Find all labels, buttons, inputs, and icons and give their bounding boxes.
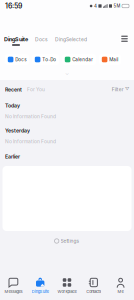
staticText: Earlier — [5, 153, 20, 160]
staticText: Yesterday — [5, 127, 30, 134]
button[interactable]: Me — [107, 278, 134, 294]
staticText: 4 — [94, 3, 97, 9]
staticText: DingSuite — [32, 289, 49, 294]
button[interactable]: Calendar — [62, 54, 96, 65]
staticText: 5M — [113, 3, 120, 9]
staticText: No Information Found — [5, 113, 56, 119]
button[interactable]: Messages — [0, 278, 27, 294]
staticText: Today — [5, 102, 20, 109]
button[interactable]: Filter — [112, 86, 129, 92]
staticText: 16:59 — [5, 2, 22, 10]
staticText: Workplace — [57, 289, 76, 294]
staticText: DingSelected — [55, 36, 87, 42]
staticText: Docs — [15, 57, 26, 62]
button[interactable]: Docs — [5, 54, 29, 65]
staticText: For You — [27, 86, 45, 92]
button[interactable]: Mail — [99, 54, 121, 65]
staticText: Settings — [60, 238, 79, 244]
button[interactable]: DingSelected — [55, 36, 87, 46]
button[interactable]: To-Do — [32, 54, 59, 65]
staticText: DingSuite — [4, 36, 28, 42]
staticText: Messages — [4, 289, 22, 294]
button[interactable]: Settings — [54, 238, 79, 244]
button[interactable]: DingSuite — [4, 36, 28, 46]
staticText: Mail — [109, 57, 118, 62]
staticText: ▽ — [125, 87, 129, 92]
button[interactable]: For You — [27, 86, 45, 92]
button[interactable]: Recent — [5, 86, 22, 93]
button[interactable]: Workplace — [54, 278, 80, 294]
button[interactable]: Menu — [119, 33, 130, 46]
staticText: Filter — [112, 86, 124, 92]
button[interactable]: Docs — [35, 36, 48, 46]
staticText: Calendar — [72, 57, 93, 62]
staticText: No Information Found — [5, 138, 56, 144]
button[interactable]: Contacts — [80, 278, 107, 294]
staticText: Contacts — [86, 289, 101, 294]
button[interactable]: DingSuite — [27, 278, 54, 294]
staticText: ⌄ — [65, 70, 69, 76]
staticText: Docs — [35, 36, 48, 42]
staticText: Recent — [5, 86, 22, 93]
staticText: To-Do — [42, 57, 56, 62]
staticText: Me — [118, 289, 124, 294]
